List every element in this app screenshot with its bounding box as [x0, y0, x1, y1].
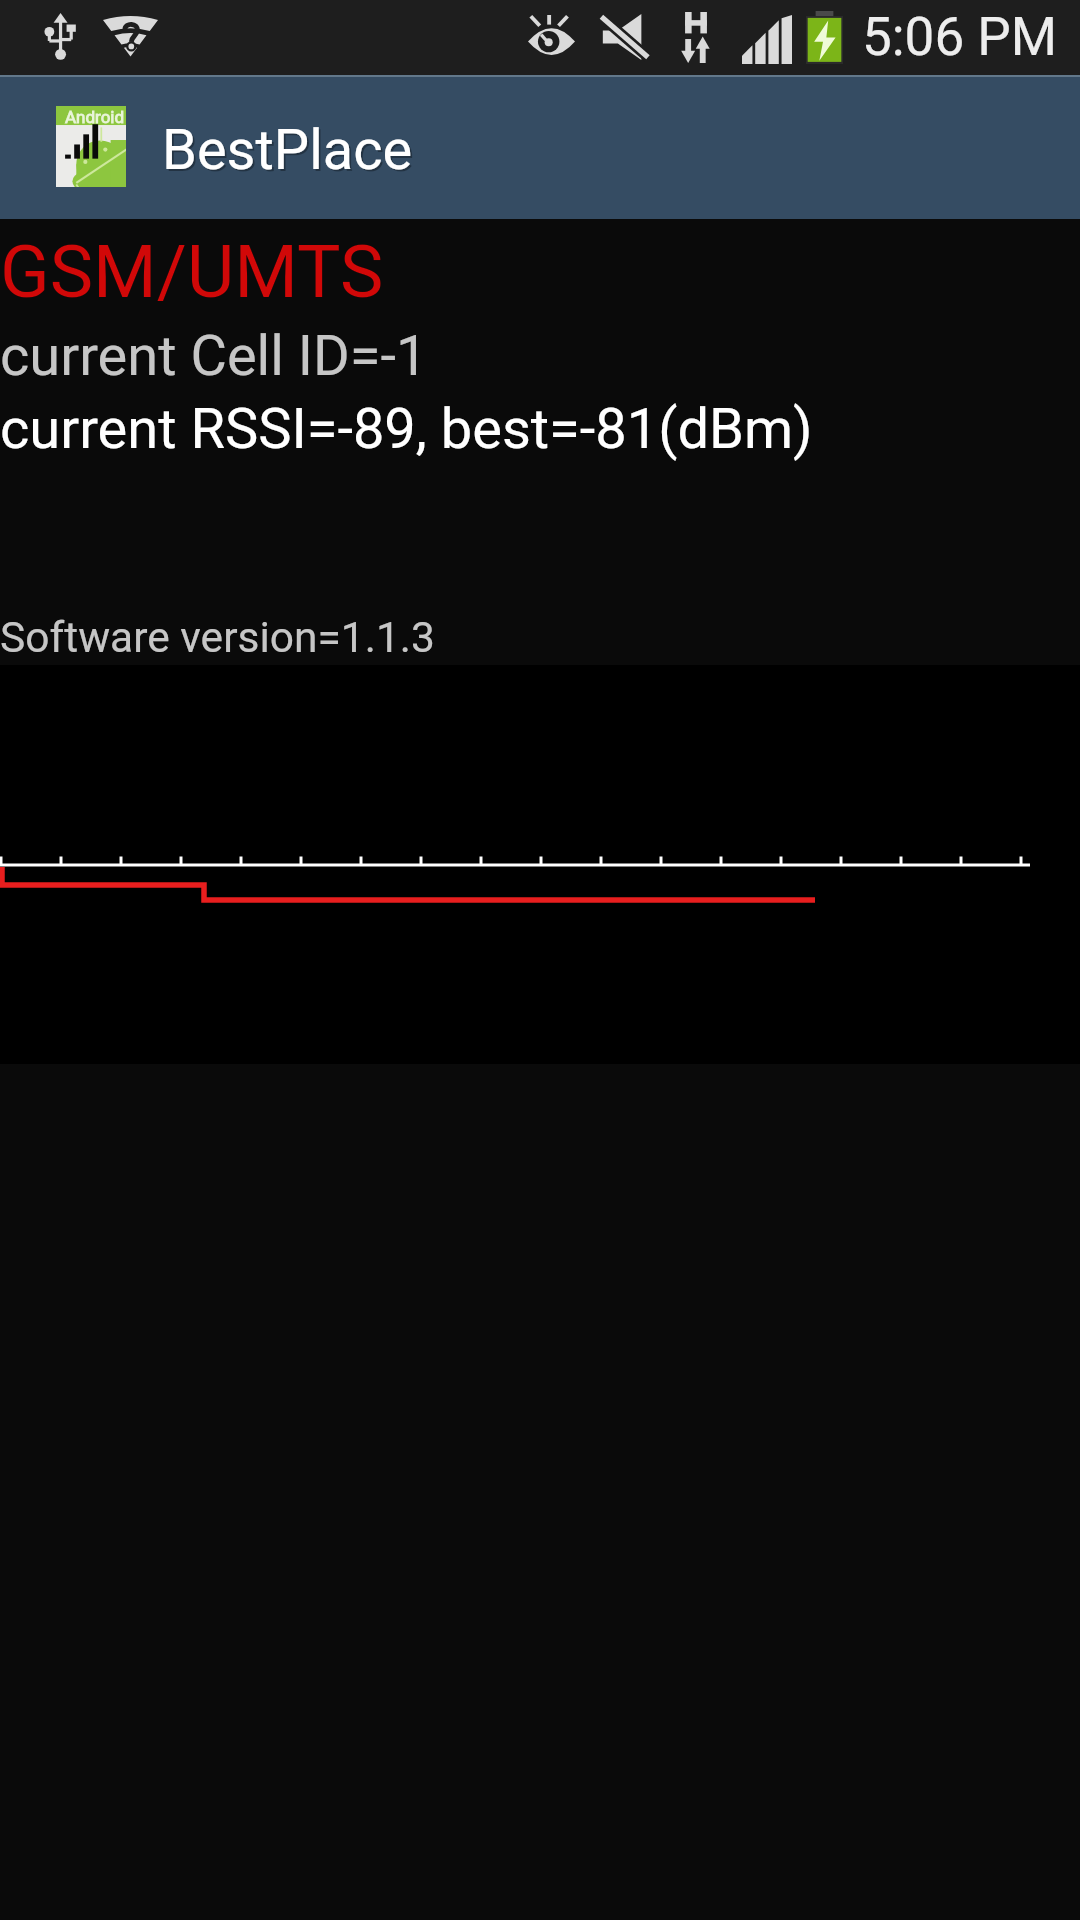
button[interactable]: Signal strength chart — [0, 665, 1080, 1064]
button[interactable]: BestPlace app icon — [0, 75, 1080, 219]
staticText: BestPlace — [162, 117, 413, 183]
staticText: current Cell ID=-1 — [0, 323, 428, 389]
staticText: 5:06 PM — [862, 6, 1058, 68]
staticText: Software version=1.1.3 — [0, 613, 435, 663]
staticText: GSM/UMTS — [0, 229, 384, 315]
button[interactable]: Status bar — [0, 0, 1080, 75]
staticText: BestPlace — [164, 119, 415, 185]
staticText: Android — [65, 107, 125, 127]
staticText: current RSSI=-89, best=-81(dBm) — [0, 396, 813, 462]
button[interactable]: Cell readout — [0, 219, 1080, 665]
other: BestPlace app icon — [56, 106, 126, 187]
